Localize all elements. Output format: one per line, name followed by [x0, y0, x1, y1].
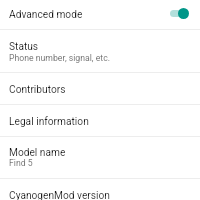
button[interactable]: Legal information: [0, 104, 200, 137]
button[interactable]: CyanogenMod version: [0, 178, 200, 200]
button[interactable]: Status: [0, 29, 200, 73]
staticText: Legal information: [9, 116, 89, 128]
button[interactable]: Model name: [0, 136, 200, 179]
staticText: Status: [9, 41, 39, 53]
button[interactable]: Advanced mode switch, on: [168, 5, 192, 22]
button[interactable]: Advanced mode: [0, 0, 200, 30]
staticText: Advanced mode: [9, 9, 83, 21]
staticText: Model name: [9, 147, 66, 159]
button[interactable]: Contributors: [0, 72, 200, 105]
staticText: Phone number, signal, etc.: [9, 53, 111, 63]
staticText: CyanogenMod version: [9, 190, 110, 200]
staticText: Find 5: [9, 158, 33, 168]
staticText: Contributors: [9, 84, 66, 96]
